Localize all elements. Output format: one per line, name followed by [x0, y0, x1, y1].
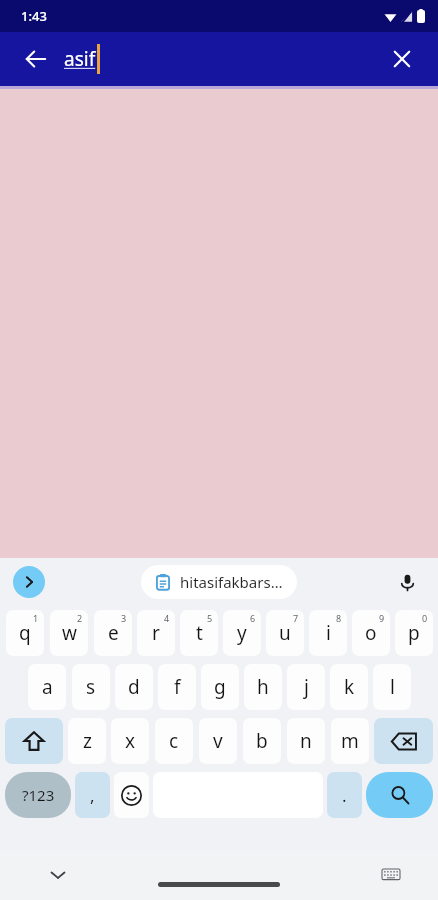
button[interactable]: v: [199, 718, 237, 764]
button[interactable]: b: [243, 718, 281, 764]
staticText: h: [257, 674, 269, 700]
button[interactable]: Voice input: [390, 565, 424, 599]
staticText: 2: [77, 612, 83, 624]
staticText: e: [108, 620, 119, 646]
button[interactable]: Clear: [380, 37, 424, 81]
button[interactable]: Home: [158, 882, 280, 887]
staticText: s: [86, 674, 96, 700]
staticText: 5: [207, 612, 213, 624]
button[interactable]: x: [111, 718, 149, 764]
staticText: 0: [422, 612, 428, 624]
button[interactable]: i: [309, 610, 347, 656]
staticText: i: [326, 620, 331, 646]
staticText: q: [19, 620, 31, 646]
staticText: x: [125, 728, 136, 754]
button[interactable]: w: [50, 610, 88, 656]
button[interactable]: z: [68, 718, 106, 764]
staticText: o: [365, 620, 377, 646]
button[interactable]: l: [373, 664, 411, 710]
button[interactable]: n: [287, 718, 325, 764]
button[interactable]: o: [352, 610, 390, 656]
staticText: 6: [250, 612, 256, 624]
button[interactable]: Search: [366, 772, 433, 818]
button[interactable]: t: [180, 610, 218, 656]
staticText: 3: [121, 612, 127, 624]
button[interactable]: Hide keyboard: [40, 857, 76, 893]
staticText: r: [152, 620, 160, 646]
staticText: g: [214, 674, 226, 700]
button[interactable]: g: [201, 664, 239, 710]
staticText: j: [304, 674, 309, 700]
staticText: 9: [379, 612, 385, 624]
button[interactable]: Switch keyboard: [374, 858, 408, 892]
staticText: w: [62, 620, 77, 646]
staticText: m: [341, 728, 359, 754]
button[interactable]: Expand suggestions: [13, 566, 45, 598]
button[interactable]: Backspace: [374, 718, 433, 764]
staticText: 4: [164, 612, 170, 624]
button[interactable]: Back: [14, 37, 58, 81]
button[interactable]: .: [327, 772, 362, 818]
staticText: 1: [33, 612, 39, 624]
staticText: u: [279, 620, 291, 646]
staticText: p: [408, 620, 420, 646]
staticText: .: [342, 784, 347, 807]
staticText: k: [344, 674, 355, 700]
staticText: 7: [293, 612, 299, 624]
staticText: asif: [64, 46, 96, 72]
staticText: ,: [90, 784, 95, 807]
button[interactable]: ?123: [5, 772, 71, 818]
button[interactable]: k: [330, 664, 368, 710]
staticText: 8: [336, 612, 342, 624]
button[interactable]: u: [266, 610, 304, 656]
staticText: hitasifakbars…: [180, 572, 283, 592]
button[interactable]: s: [72, 664, 110, 710]
button[interactable]: h: [244, 664, 282, 710]
staticText: z: [83, 728, 92, 754]
button[interactable]: a: [28, 664, 66, 710]
button[interactable]: Emoji: [114, 772, 149, 818]
staticText: 1:43: [21, 7, 47, 25]
button[interactable]: hitasifakbars…: [141, 565, 297, 599]
staticText: y: [237, 620, 247, 646]
staticText: c: [169, 728, 179, 754]
button[interactable]: j: [287, 664, 325, 710]
button[interactable]: ,: [75, 772, 110, 818]
button[interactable]: p: [395, 610, 433, 656]
button[interactable]: d: [115, 664, 153, 710]
staticText: d: [128, 674, 140, 700]
button[interactable]: m: [331, 718, 369, 764]
button[interactable]: y: [223, 610, 261, 656]
staticText: a: [42, 674, 53, 700]
staticText: n: [300, 728, 312, 754]
button[interactable]: asif: [64, 44, 100, 74]
staticText: v: [213, 728, 223, 754]
staticText: f: [174, 674, 181, 700]
button[interactable]: f: [158, 664, 196, 710]
staticText: ?123: [22, 785, 55, 805]
staticText: l: [390, 674, 395, 700]
button[interactable]: c: [155, 718, 193, 764]
button[interactable]: q: [6, 610, 44, 656]
button[interactable]: Shift: [5, 718, 63, 764]
staticText: b: [256, 728, 268, 754]
staticText: t: [196, 620, 203, 646]
button[interactable]: r: [137, 610, 175, 656]
button[interactable]: e: [94, 610, 132, 656]
